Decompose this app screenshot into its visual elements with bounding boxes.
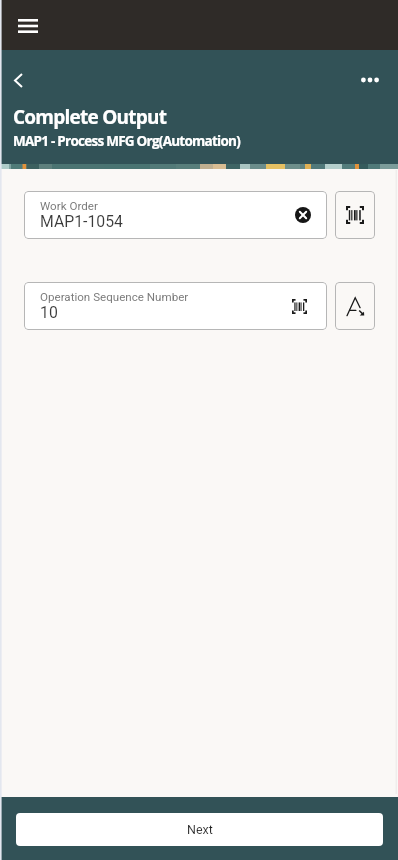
staticText: Next — [187, 822, 213, 837]
button[interactable]: Clear — [287, 199, 319, 231]
staticText: MAP1-1054 — [40, 212, 123, 231]
button[interactable]: Next — [16, 813, 383, 846]
staticText: Work Order — [40, 199, 98, 213]
button[interactable]: Menu — [10, 8, 46, 44]
staticText: 10 — [40, 303, 58, 322]
button[interactable]: Scan barcode — [335, 191, 375, 239]
staticText: Operation Sequence Number — [40, 290, 189, 304]
button[interactable]: Back — [3, 65, 33, 95]
staticText: Complete Output — [13, 104, 167, 130]
button[interactable]: Recognize text — [335, 282, 375, 330]
button[interactable]: Scan barcode — [283, 290, 315, 322]
staticText: MAP1 - Process MFG Org(Automation) — [13, 132, 241, 150]
button[interactable]: Operation Sequence Number — [24, 282, 327, 330]
button[interactable]: More options — [355, 65, 385, 95]
button[interactable]: Work Order — [24, 191, 327, 239]
